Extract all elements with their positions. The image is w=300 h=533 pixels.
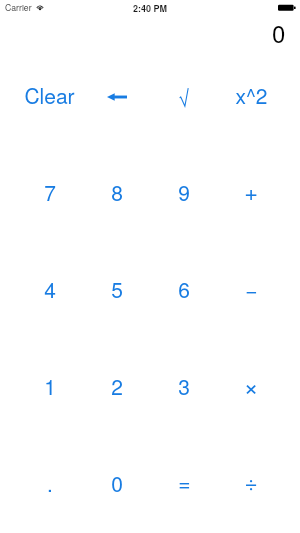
button[interactable]: Minus: [218, 240, 285, 337]
staticText: x^2: [235, 80, 268, 110]
staticText: 9: [178, 177, 190, 207]
staticText: 8: [111, 177, 123, 207]
button[interactable]: Square: [218, 46, 285, 143]
button[interactable]: 1: [16, 337, 83, 434]
staticText: 5: [111, 274, 123, 304]
button[interactable]: 3: [150, 337, 217, 434]
button[interactable]: 8: [83, 143, 150, 240]
staticText: −: [245, 274, 258, 304]
staticText: Carrier: [5, 1, 32, 13]
staticText: 1: [44, 371, 56, 401]
button[interactable]: 4: [16, 240, 83, 337]
staticText: 0: [111, 468, 123, 498]
staticText: 2:40 PM: [133, 2, 168, 15]
button[interactable]: Square root: [150, 46, 217, 143]
staticText: +: [244, 174, 258, 208]
other: Wi-Fi signal: [36, 3, 44, 10]
staticText: 2: [111, 371, 123, 401]
button[interactable]: Plus: [218, 143, 285, 240]
staticText: ÷: [244, 465, 258, 497]
button[interactable]: Clear: [16, 46, 83, 143]
button[interactable]: 5: [83, 240, 150, 337]
button[interactable]: 7: [16, 143, 83, 240]
button[interactable]: 6: [150, 240, 217, 337]
staticText: √: [178, 83, 190, 113]
other: Battery full: [278, 4, 296, 12]
button[interactable]: 2: [83, 337, 150, 434]
button[interactable]: Divide: [218, 434, 285, 531]
staticText: 6: [178, 274, 190, 304]
button[interactable]: Backspace: [83, 46, 150, 143]
button[interactable]: 0: [83, 434, 150, 531]
button[interactable]: Equals: [150, 434, 217, 531]
button[interactable]: 9: [150, 143, 217, 240]
staticText: Clear: [24, 80, 75, 110]
staticText: 4: [44, 274, 56, 304]
staticText: ×: [243, 366, 259, 403]
staticText: .: [47, 468, 53, 498]
staticText: 3: [178, 371, 190, 401]
staticText: 0: [272, 15, 286, 45]
staticText: 7: [44, 177, 56, 207]
staticText: =: [178, 467, 191, 497]
button[interactable]: Decimal point: [16, 434, 83, 531]
button[interactable]: Multiply: [218, 337, 285, 434]
